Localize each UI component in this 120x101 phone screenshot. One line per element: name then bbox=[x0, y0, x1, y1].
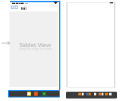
staticText: Tablet View bbox=[19, 41, 51, 49]
staticText: drag the edge to resize bbox=[19, 47, 52, 51]
